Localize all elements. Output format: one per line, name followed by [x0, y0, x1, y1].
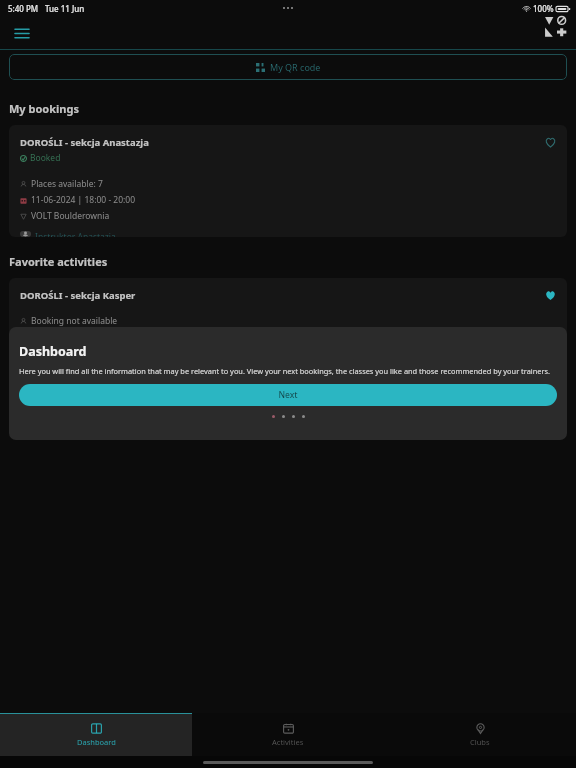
- button[interactable]: Next: [19, 384, 557, 406]
- staticText: Booked: [30, 152, 61, 164]
- staticText: My bookings: [9, 101, 79, 116]
- staticText: Instruktor Anastazja: [35, 231, 116, 237]
- staticText: DOROŚLI - sekcja Kasper: [20, 289, 136, 302]
- button[interactable]: DOROŚLI - sekcja Kasper: [9, 278, 567, 348]
- staticText: My QR code: [270, 61, 321, 73]
- staticText: Booking not available: [31, 315, 118, 327]
- button[interactable]: Dashboard: [0, 713, 192, 756]
- staticText: Dashboard: [19, 343, 87, 360]
- button[interactable]: My QR code: [9, 54, 567, 80]
- button[interactable]: DOROŚLI - sekcja Anastazja: [9, 125, 567, 237]
- button[interactable]: Clubs: [384, 713, 576, 756]
- staticText: Activities: [272, 737, 304, 747]
- staticText: 100%: [533, 3, 554, 14]
- button[interactable]: Add to favourites: [540, 132, 560, 152]
- staticText: Places available: 7: [31, 178, 103, 190]
- staticText: Here you will find all the information t…: [19, 366, 551, 376]
- staticText: Clubs: [470, 737, 490, 747]
- button[interactable]: Activities: [192, 713, 384, 756]
- staticText: 5:40 PM: [8, 3, 39, 14]
- staticText: VOLT Boulderownia: [31, 210, 110, 222]
- staticText: Next: [278, 389, 298, 401]
- staticText: 11-06-2024 | 18:00 - 20:00: [31, 194, 136, 206]
- staticText: DOROŚLI - sekcja Anastazja: [20, 136, 149, 149]
- button[interactable]: Open navigation menu: [8, 19, 36, 47]
- staticText: Tue 11 Jun: [45, 3, 85, 14]
- staticText: Dashboard: [77, 737, 116, 747]
- staticText: Favorite activities: [9, 254, 108, 269]
- button[interactable]: Remove from favourites: [540, 285, 560, 305]
